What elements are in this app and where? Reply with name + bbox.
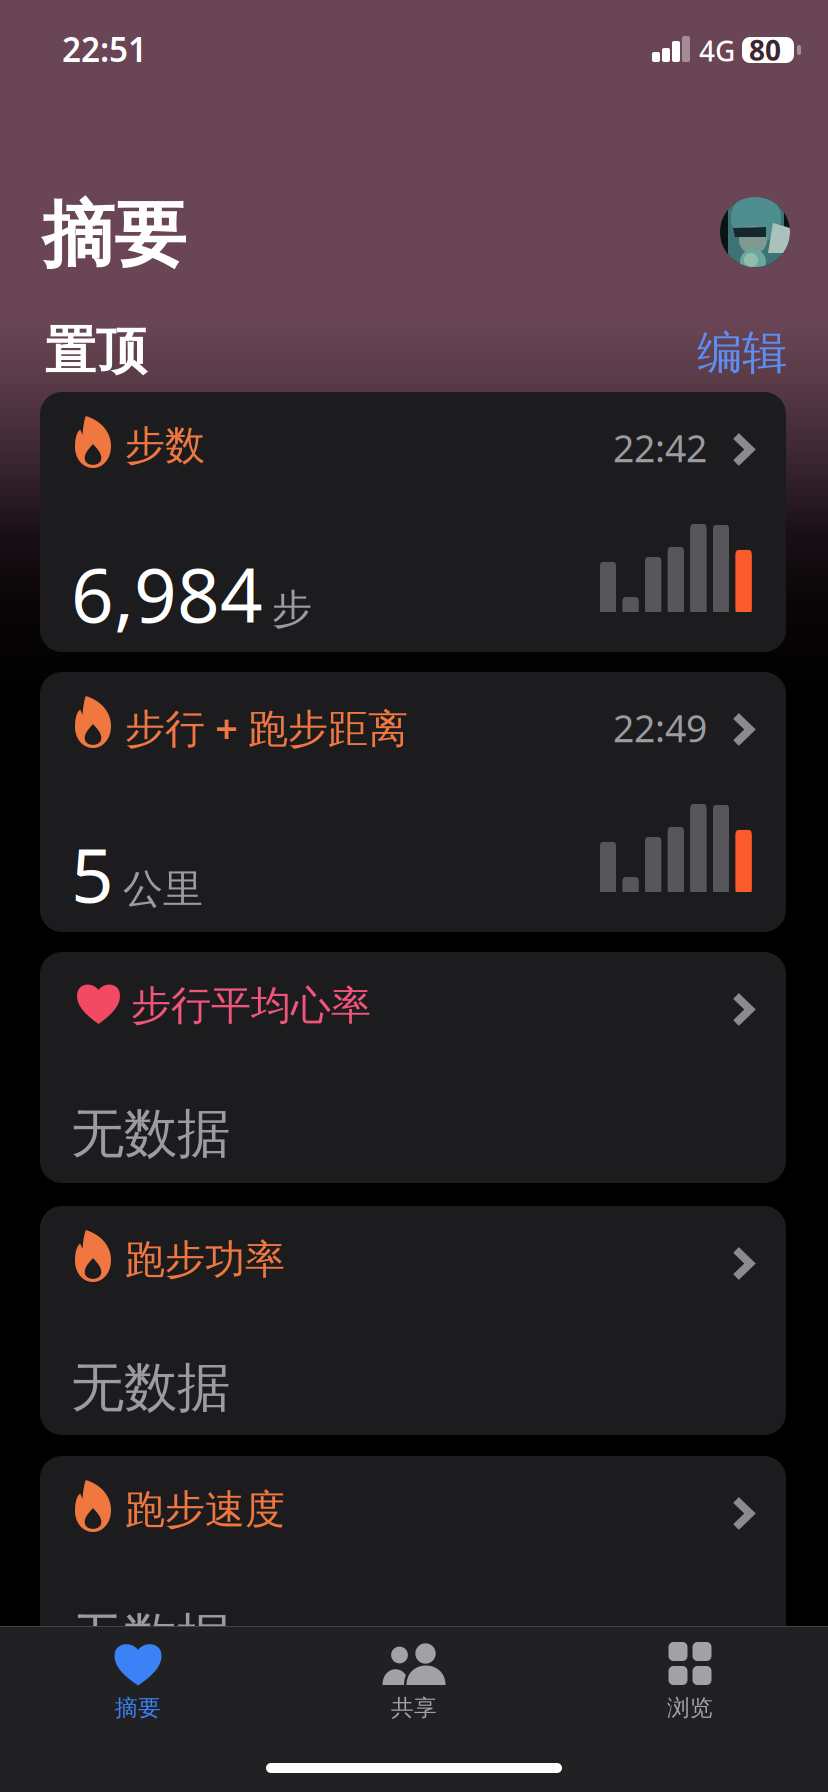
button[interactable]: 摘要 bbox=[0, 1628, 276, 1723]
staticText: 步行平均心率 bbox=[131, 981, 371, 1030]
staticText: 共享 bbox=[391, 1694, 437, 1722]
staticText: 无数据 bbox=[71, 1605, 230, 1670]
staticText: 跑步速度 bbox=[125, 1485, 285, 1534]
button[interactable]: 跑步功率 bbox=[40, 1206, 786, 1435]
button[interactable]: 步行平均心率 bbox=[40, 952, 786, 1183]
staticText: 跑步功率 bbox=[125, 1235, 285, 1284]
button[interactable]: 浏览 bbox=[552, 1628, 828, 1723]
button[interactable]: 共享 bbox=[276, 1628, 552, 1723]
staticText: 步行 + 跑步距离 bbox=[125, 701, 408, 754]
button[interactable]: 跑步速度 bbox=[40, 1456, 786, 1687]
staticText: 6,984 bbox=[71, 544, 263, 643]
staticText: 5 bbox=[71, 824, 114, 923]
staticText: 80 bbox=[749, 31, 781, 69]
button[interactable]: 步行 + 跑步距离 bbox=[40, 672, 786, 932]
button[interactable]: 个人资料 bbox=[720, 197, 790, 267]
button[interactable]: 编辑 bbox=[697, 325, 787, 381]
staticText: 公里 bbox=[123, 865, 203, 914]
staticText: 摘要 bbox=[115, 1694, 161, 1722]
staticText: 无数据 bbox=[71, 1101, 230, 1166]
staticText: 置顶 bbox=[45, 320, 147, 382]
staticText: 浏览 bbox=[667, 1694, 713, 1722]
staticText: 无数据 bbox=[71, 1355, 230, 1420]
staticText: 22:51 bbox=[62, 27, 147, 71]
staticText: 4G bbox=[699, 32, 735, 69]
staticText: 步数 bbox=[125, 421, 205, 470]
button[interactable]: 步数 bbox=[40, 392, 786, 652]
staticText: 摘要 bbox=[42, 191, 186, 279]
staticText: 步 bbox=[272, 585, 312, 634]
staticText: 22:49 bbox=[613, 703, 707, 753]
staticText: 编辑 bbox=[697, 325, 787, 381]
staticText: 22:42 bbox=[613, 423, 707, 473]
